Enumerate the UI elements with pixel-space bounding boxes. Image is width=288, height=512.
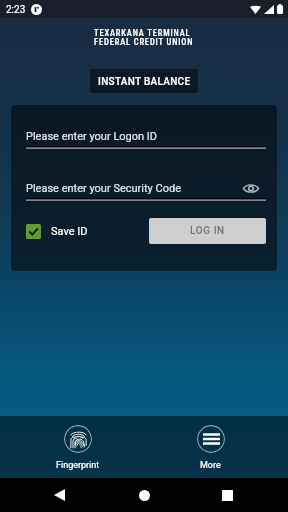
button[interactable]: Recent apps — [206, 478, 246, 512]
staticText: Please enter your Logon ID — [26, 130, 158, 143]
staticText: Save ID — [51, 225, 88, 238]
button[interactable]: Fingerprint — [30, 416, 125, 478]
staticText: Fingerprint — [56, 460, 100, 471]
other: App notification — [31, 4, 42, 15]
staticText: TEXARKANA TERMINAL FEDERAL CREDIT UNION — [94, 28, 194, 47]
button[interactable]: More — [163, 416, 258, 478]
button[interactable]: Home — [124, 478, 164, 512]
button[interactable]: Save ID — [26, 224, 88, 239]
staticText: Please enter your Security Code — [26, 182, 181, 195]
staticText: 2:23 — [6, 4, 26, 16]
staticText: INSTANT BALANCE — [98, 76, 191, 88]
button[interactable]: INSTANT BALANCE — [90, 69, 198, 93]
button[interactable]: Back — [42, 478, 82, 512]
staticText: LOG IN — [190, 225, 225, 237]
button[interactable]: LOG IN — [149, 218, 266, 244]
staticText: More — [200, 460, 221, 471]
button[interactable]: Show security code — [241, 178, 261, 198]
